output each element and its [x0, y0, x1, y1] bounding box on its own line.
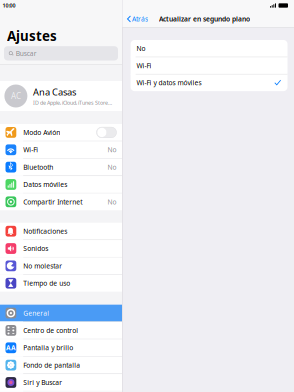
staticText: Wi-Fi: [137, 61, 152, 70]
staticText: Centro de control: [23, 326, 78, 335]
button[interactable]: AC: [0, 81, 122, 111]
staticText: No molestar: [23, 261, 62, 270]
button[interactable]: Compartir Internet: [0, 193, 122, 210]
staticText: Wi-Fi: [23, 145, 38, 154]
staticText: Compartir Internet: [23, 197, 82, 206]
button[interactable]: Sonidos: [0, 240, 122, 257]
button[interactable]: General: [0, 305, 122, 322]
button[interactable]: Centro de control: [0, 322, 122, 339]
staticText: Ajustes: [7, 27, 57, 45]
staticText: Ana Casas: [33, 86, 76, 98]
button[interactable]: Modo Avión: [0, 124, 122, 141]
staticText: AA: [6, 343, 16, 352]
staticText: General: [23, 309, 49, 318]
staticText: No: [137, 44, 146, 53]
staticText: ID de Apple, iCloud, iTunes Store…: [33, 99, 112, 106]
staticText: Modo Avión: [23, 128, 60, 137]
button[interactable]: Atrás: [123, 11, 151, 27]
staticText: No: [107, 163, 116, 172]
button[interactable]: Siri y Buscar: [0, 374, 122, 391]
button[interactable]: Bluetooth: [0, 159, 122, 176]
staticText: Notificaciones: [23, 227, 67, 236]
button[interactable]: Tiempo de uso: [0, 275, 122, 292]
button[interactable]: Datos móviles: [0, 176, 122, 193]
staticText: 10:00: [3, 2, 16, 9]
staticText: AC: [11, 91, 21, 101]
button[interactable]: No: [131, 40, 287, 57]
staticText: Pantalla y brillo: [23, 343, 73, 352]
staticText: Tiempo de uso: [23, 279, 70, 288]
button[interactable]: Wi-Fi: [131, 57, 287, 74]
staticText: Sonidos: [23, 244, 48, 253]
button[interactable]: Wi-Fi: [0, 141, 122, 158]
staticText: Actualizar en segundo plano: [159, 15, 250, 23]
button[interactable]: Wi-Fi y datos móviles: [131, 74, 287, 91]
button[interactable]: AA: [0, 339, 122, 356]
button[interactable]: Fondo de pantalla: [0, 357, 122, 374]
staticText: No: [107, 197, 116, 206]
staticText: Siri y Buscar: [23, 378, 62, 387]
staticText: Atrás: [132, 15, 148, 23]
staticText: Bluetooth: [23, 163, 53, 172]
staticText: Datos móviles: [23, 180, 67, 189]
staticText: Buscar: [16, 49, 37, 58]
staticText: Fondo de pantalla: [23, 361, 80, 370]
button[interactable]: No molestar: [0, 257, 122, 274]
staticText: No: [107, 145, 116, 154]
button[interactable]: Notificaciones: [0, 223, 122, 240]
staticText: Wi-Fi y datos móviles: [137, 78, 202, 87]
